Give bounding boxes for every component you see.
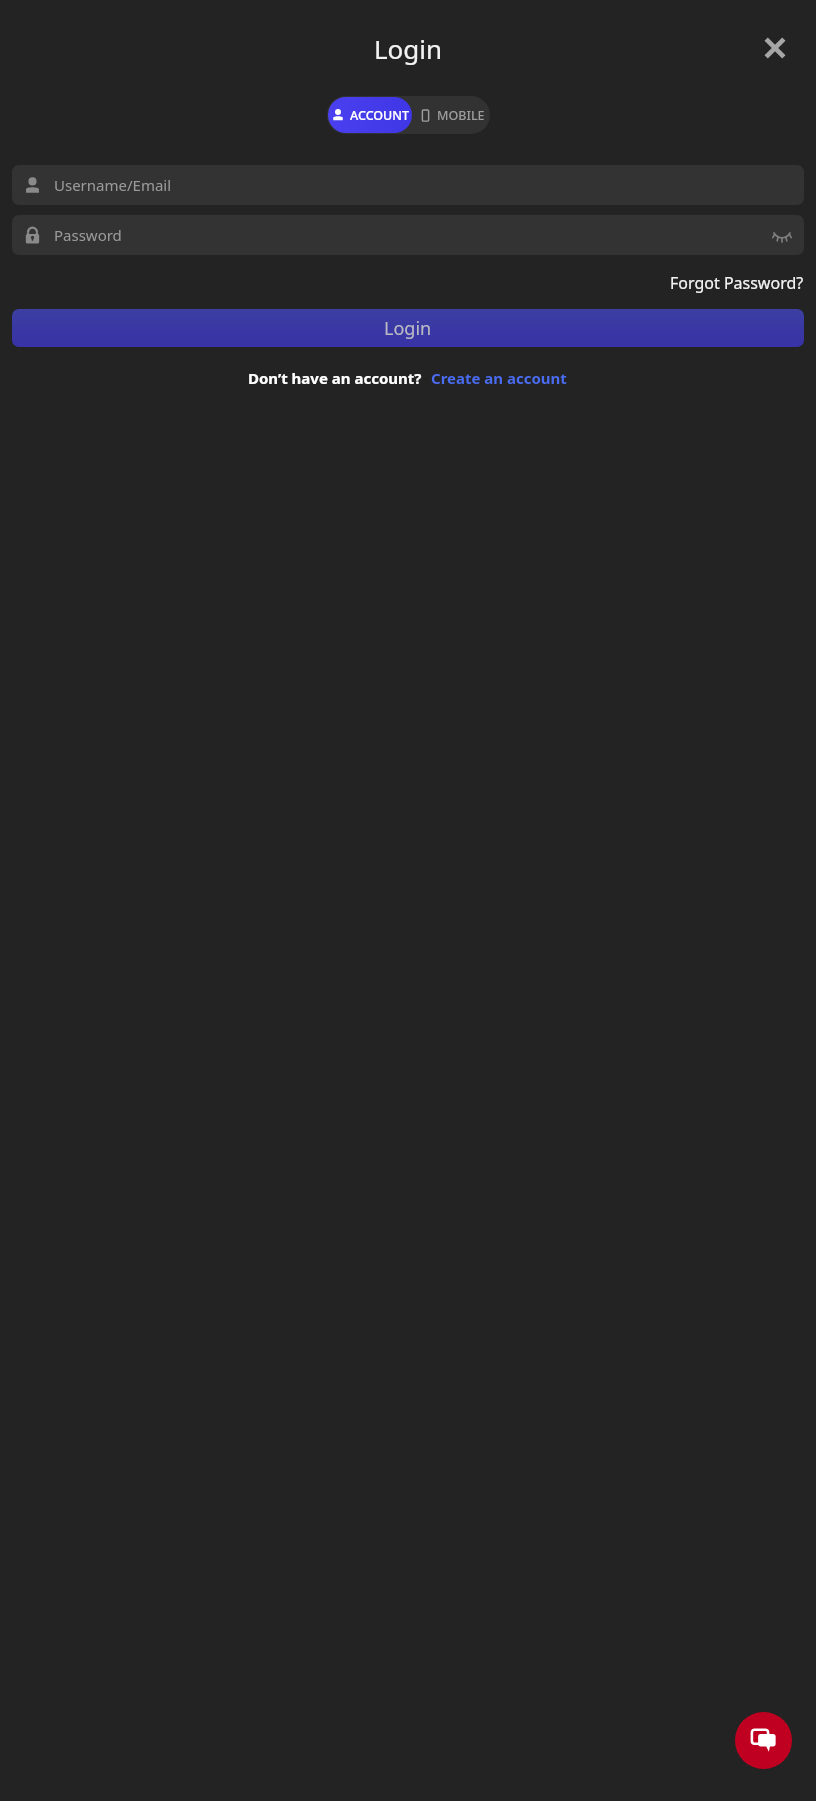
staticText: ACCOUNT: [350, 107, 410, 124]
staticText: MOBILE: [437, 107, 485, 124]
button[interactable]: MOBILE: [413, 97, 490, 133]
staticText: Create an account: [431, 368, 567, 388]
button[interactable]: Chat: [735, 1712, 792, 1769]
staticText: Login: [384, 316, 432, 341]
staticText: Username/Email: [54, 175, 172, 195]
button[interactable]: Forgot Password?: [666, 269, 808, 297]
button[interactable]: Close: [748, 21, 802, 75]
staticText: Login: [374, 31, 443, 66]
staticText: Forgot Password?: [670, 272, 804, 294]
staticText: Password: [54, 225, 122, 245]
button[interactable]: ACCOUNT: [328, 97, 412, 133]
button[interactable]: Password: [12, 215, 804, 255]
staticText: Don’t have an account?: [248, 368, 422, 388]
button[interactable]: Create an account: [429, 366, 569, 390]
button[interactable]: Login: [12, 309, 804, 347]
button[interactable]: Username/Email: [12, 165, 804, 205]
button[interactable]: Show password: [767, 220, 797, 250]
